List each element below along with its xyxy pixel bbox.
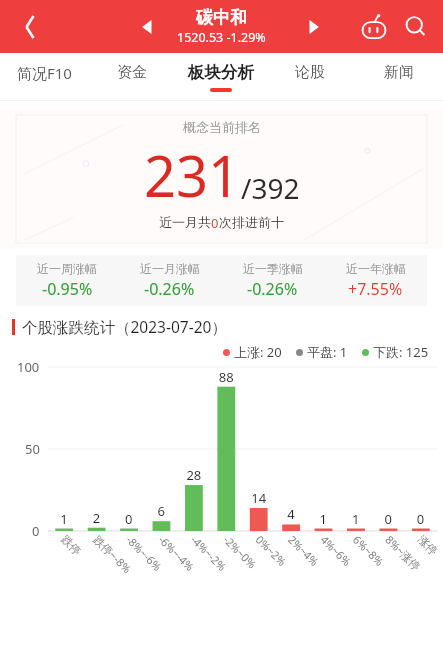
staticText: 个股涨跌统计（2023-07-20） xyxy=(22,316,227,337)
button[interactable]: 资金 xyxy=(88,53,176,101)
staticText: 下跌: 125 xyxy=(373,343,429,361)
staticText: 1520.53 -1.29% xyxy=(177,29,266,46)
staticText: 近一季涨幅 xyxy=(243,261,303,276)
button[interactable]: Back xyxy=(10,7,50,47)
staticText: -0.26% xyxy=(247,278,298,300)
button[interactable]: 论股 xyxy=(265,53,354,101)
button[interactable]: 板块分析 xyxy=(176,53,265,101)
staticText: 简况F10 xyxy=(17,63,72,83)
staticText: 近一月涨幅 xyxy=(140,261,200,276)
staticText: 平盘: 1 xyxy=(307,343,348,361)
button[interactable]: 新闻 xyxy=(354,53,443,101)
staticText: 0 xyxy=(211,214,219,232)
button[interactable]: Search xyxy=(397,8,435,46)
staticText: -0.26% xyxy=(144,278,195,300)
staticText: 231 xyxy=(144,137,241,213)
button[interactable]: Next xyxy=(297,10,331,44)
staticText: +7.55% xyxy=(348,278,403,300)
button[interactable]: 近一周涨幅 xyxy=(16,261,118,300)
staticText: 概念当前排名 xyxy=(183,119,261,135)
staticText: /392 xyxy=(241,169,300,207)
button[interactable]: 下跌: 125 xyxy=(362,343,429,361)
staticText: 板块分析 xyxy=(188,62,254,83)
staticText: 论股 xyxy=(295,63,325,82)
button[interactable]: 近一年涨幅 xyxy=(324,261,427,300)
staticText: 上涨: 20 xyxy=(234,343,282,361)
staticText: 新闻 xyxy=(384,63,414,82)
staticText: 近一周涨幅 xyxy=(37,261,97,276)
staticText: 近一月共 xyxy=(159,214,211,230)
button[interactable]: 近一月涨幅 xyxy=(118,261,221,300)
button[interactable]: 上涨: 20 xyxy=(223,343,282,361)
staticText: -0.95% xyxy=(42,278,93,300)
staticText: 资金 xyxy=(117,63,147,82)
staticText: 次排进前十 xyxy=(219,214,284,230)
button[interactable]: Previous xyxy=(130,10,164,44)
button[interactable]: Assistant xyxy=(355,8,393,46)
button[interactable]: 近一季涨幅 xyxy=(221,261,324,300)
button[interactable]: 简况F10 xyxy=(0,53,88,101)
button[interactable]: 平盘: 1 xyxy=(296,343,348,361)
staticText: 碳中和 xyxy=(196,7,247,28)
staticText: 近一年涨幅 xyxy=(346,261,406,276)
